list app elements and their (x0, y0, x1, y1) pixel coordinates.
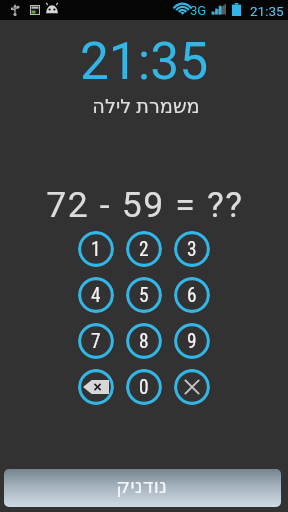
staticText: 6 (187, 284, 197, 307)
button[interactable]: 7 (78, 323, 114, 359)
staticText: 9 (187, 330, 197, 353)
button[interactable]: נודניק (4, 469, 281, 507)
staticText: 0 (139, 376, 149, 399)
staticText: משמרת לילה (2, 92, 288, 118)
staticText: 72 - 59 = ?? (1, 184, 288, 226)
staticText: 21:35 (0, 31, 288, 91)
staticText: נודניק (116, 474, 168, 497)
button[interactable]: 9 (174, 323, 210, 359)
staticText: 4 (91, 284, 101, 307)
staticText: 3 (187, 238, 197, 261)
button[interactable]: 1 (78, 231, 114, 267)
button[interactable]: 8 (126, 323, 162, 359)
staticText: 3G (190, 3, 207, 18)
staticText: 7 (91, 330, 101, 353)
button[interactable]: 6 (174, 277, 210, 313)
staticText: 1 (91, 238, 101, 261)
staticText: 5 (139, 284, 149, 307)
button[interactable]: Cancel (174, 369, 210, 405)
button[interactable]: 3 (174, 231, 210, 267)
button[interactable]: 4 (78, 277, 114, 313)
button[interactable]: Backspace (78, 369, 114, 405)
staticText: 2 (139, 238, 149, 261)
button[interactable]: 5 (126, 277, 162, 313)
staticText: 21:35 (250, 3, 284, 19)
staticText: 8 (139, 330, 149, 353)
button[interactable]: 0 (126, 369, 162, 405)
button[interactable]: 2 (126, 231, 162, 267)
